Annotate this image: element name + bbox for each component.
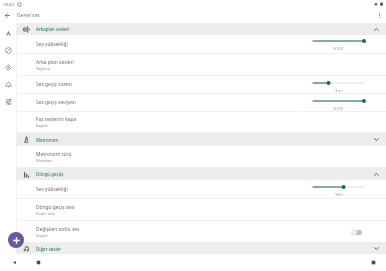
staticText: Döngü geçişi xyxy=(36,171,64,177)
button[interactable]: Metronom xyxy=(17,133,386,146)
staticText: Arka plan sesleri xyxy=(36,59,74,66)
button[interactable]: Döngü geçiş sesi xyxy=(17,199,386,220)
button[interactable]: Add xyxy=(8,232,24,248)
staticText: Ses yüksekliği xyxy=(36,41,68,48)
staticText: Döngü geçiş sesi xyxy=(36,204,75,211)
button[interactable]: Recents xyxy=(366,254,381,271)
button[interactable]: Ses yüksekliği xyxy=(17,35,386,53)
button[interactable]: Diğer sesler xyxy=(17,243,386,254)
staticText: Kapalı xyxy=(36,233,48,238)
button[interactable]: Home xyxy=(0,25,16,42)
staticText: Metronom xyxy=(36,137,59,143)
staticText: Diğer sesler xyxy=(36,246,61,252)
staticText: %60 xyxy=(335,192,343,197)
staticText: 3 sn xyxy=(335,88,343,93)
button[interactable]: Collapse xyxy=(369,23,383,35)
button[interactable]: Değişken tonlu ses xyxy=(17,221,386,242)
staticText: Genel ses xyxy=(17,12,40,19)
staticText: Ses geçiş seviyesi xyxy=(36,99,76,106)
button[interactable]: Settings xyxy=(0,93,16,110)
staticText: Kadın sesi xyxy=(36,211,55,216)
button[interactable]: Effects xyxy=(0,59,16,76)
staticText: Marakas xyxy=(36,158,52,163)
button[interactable]: Alarm xyxy=(0,76,16,93)
button[interactable]: Metronom türü xyxy=(17,146,386,167)
button[interactable]: Expand xyxy=(369,243,383,254)
button[interactable]: More options xyxy=(372,8,386,22)
button[interactable]: Arkaplan sesleri xyxy=(17,23,386,35)
button[interactable]: Collapse xyxy=(369,168,383,180)
button[interactable]: Arka plan sesleri xyxy=(17,54,386,75)
button[interactable]: Ses geçiş süresi xyxy=(17,76,386,93)
staticText: Ses yüksekliği xyxy=(36,186,68,193)
button[interactable]: Back xyxy=(0,8,14,22)
button[interactable]: Ses geçiş seviyesi xyxy=(17,94,386,111)
button[interactable]: Faz seslerini kapa xyxy=(17,112,386,132)
staticText: Ses geçiş süresi xyxy=(36,81,72,88)
button[interactable]: Ses yüksekliği xyxy=(17,180,386,198)
button[interactable]: Döngü geçişi xyxy=(17,168,386,180)
staticText: Yağmur xyxy=(36,66,51,71)
staticText: Faz seslerini kapa xyxy=(36,116,77,123)
button[interactable]: Expand xyxy=(369,133,383,146)
staticText: Metronom türü xyxy=(36,151,72,158)
staticText: %100 xyxy=(333,106,344,111)
staticText: Değişken tonlu ses xyxy=(36,226,80,233)
staticText: %100 xyxy=(333,46,344,51)
staticText: Arkaplan sesleri xyxy=(36,26,70,32)
button[interactable]: Back xyxy=(7,254,22,271)
button[interactable]: Home xyxy=(31,254,46,271)
staticText: Kapalı xyxy=(36,123,48,128)
staticText: 18:42 xyxy=(3,1,14,7)
button[interactable]: Do not disturb xyxy=(0,42,16,59)
